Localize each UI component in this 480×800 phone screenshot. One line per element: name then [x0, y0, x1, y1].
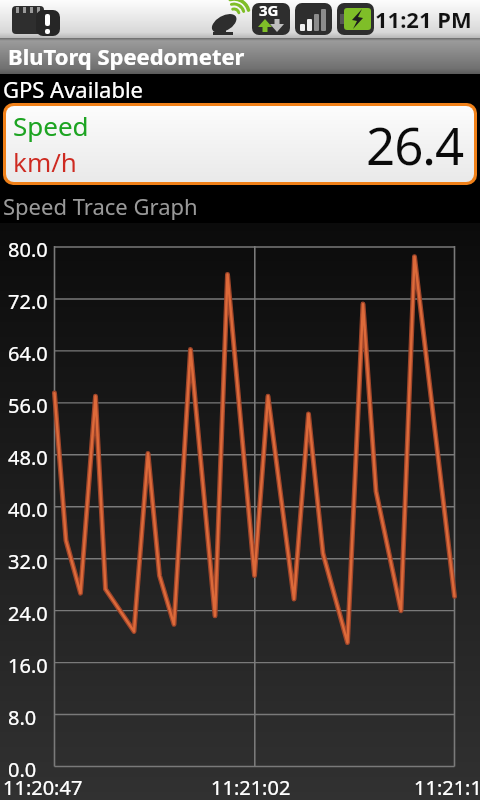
staticText: 8.0 — [8, 704, 37, 731]
staticText: 56.0 — [8, 392, 48, 419]
button[interactable]: Speed — [3, 103, 477, 185]
staticText: 32.0 — [8, 548, 48, 575]
staticText: 40.0 — [8, 496, 48, 523]
staticText: BluTorq Speedometer — [8, 41, 245, 71]
staticText: Speed Trace Graph — [3, 191, 198, 221]
staticText: GPS Available — [3, 74, 144, 103]
staticText: 11:20:47 — [3, 774, 83, 800]
staticText: km/h — [13, 144, 77, 179]
staticText: 24.0 — [8, 600, 48, 627]
staticText: 11:21:02 — [211, 774, 291, 800]
staticText: 11:21 PM — [375, 4, 472, 34]
staticText: 64.0 — [8, 340, 48, 367]
staticText: 3G — [259, 0, 279, 20]
staticText: 0.0 — [8, 756, 37, 783]
staticText: 80.0 — [8, 236, 48, 263]
staticText: 11:21:17 — [414, 774, 480, 800]
staticText: 72.0 — [8, 288, 48, 315]
staticText: 26.4 — [366, 110, 464, 179]
staticText: 48.0 — [8, 444, 48, 471]
staticText: Speed — [13, 108, 89, 143]
staticText: 16.0 — [8, 652, 48, 679]
